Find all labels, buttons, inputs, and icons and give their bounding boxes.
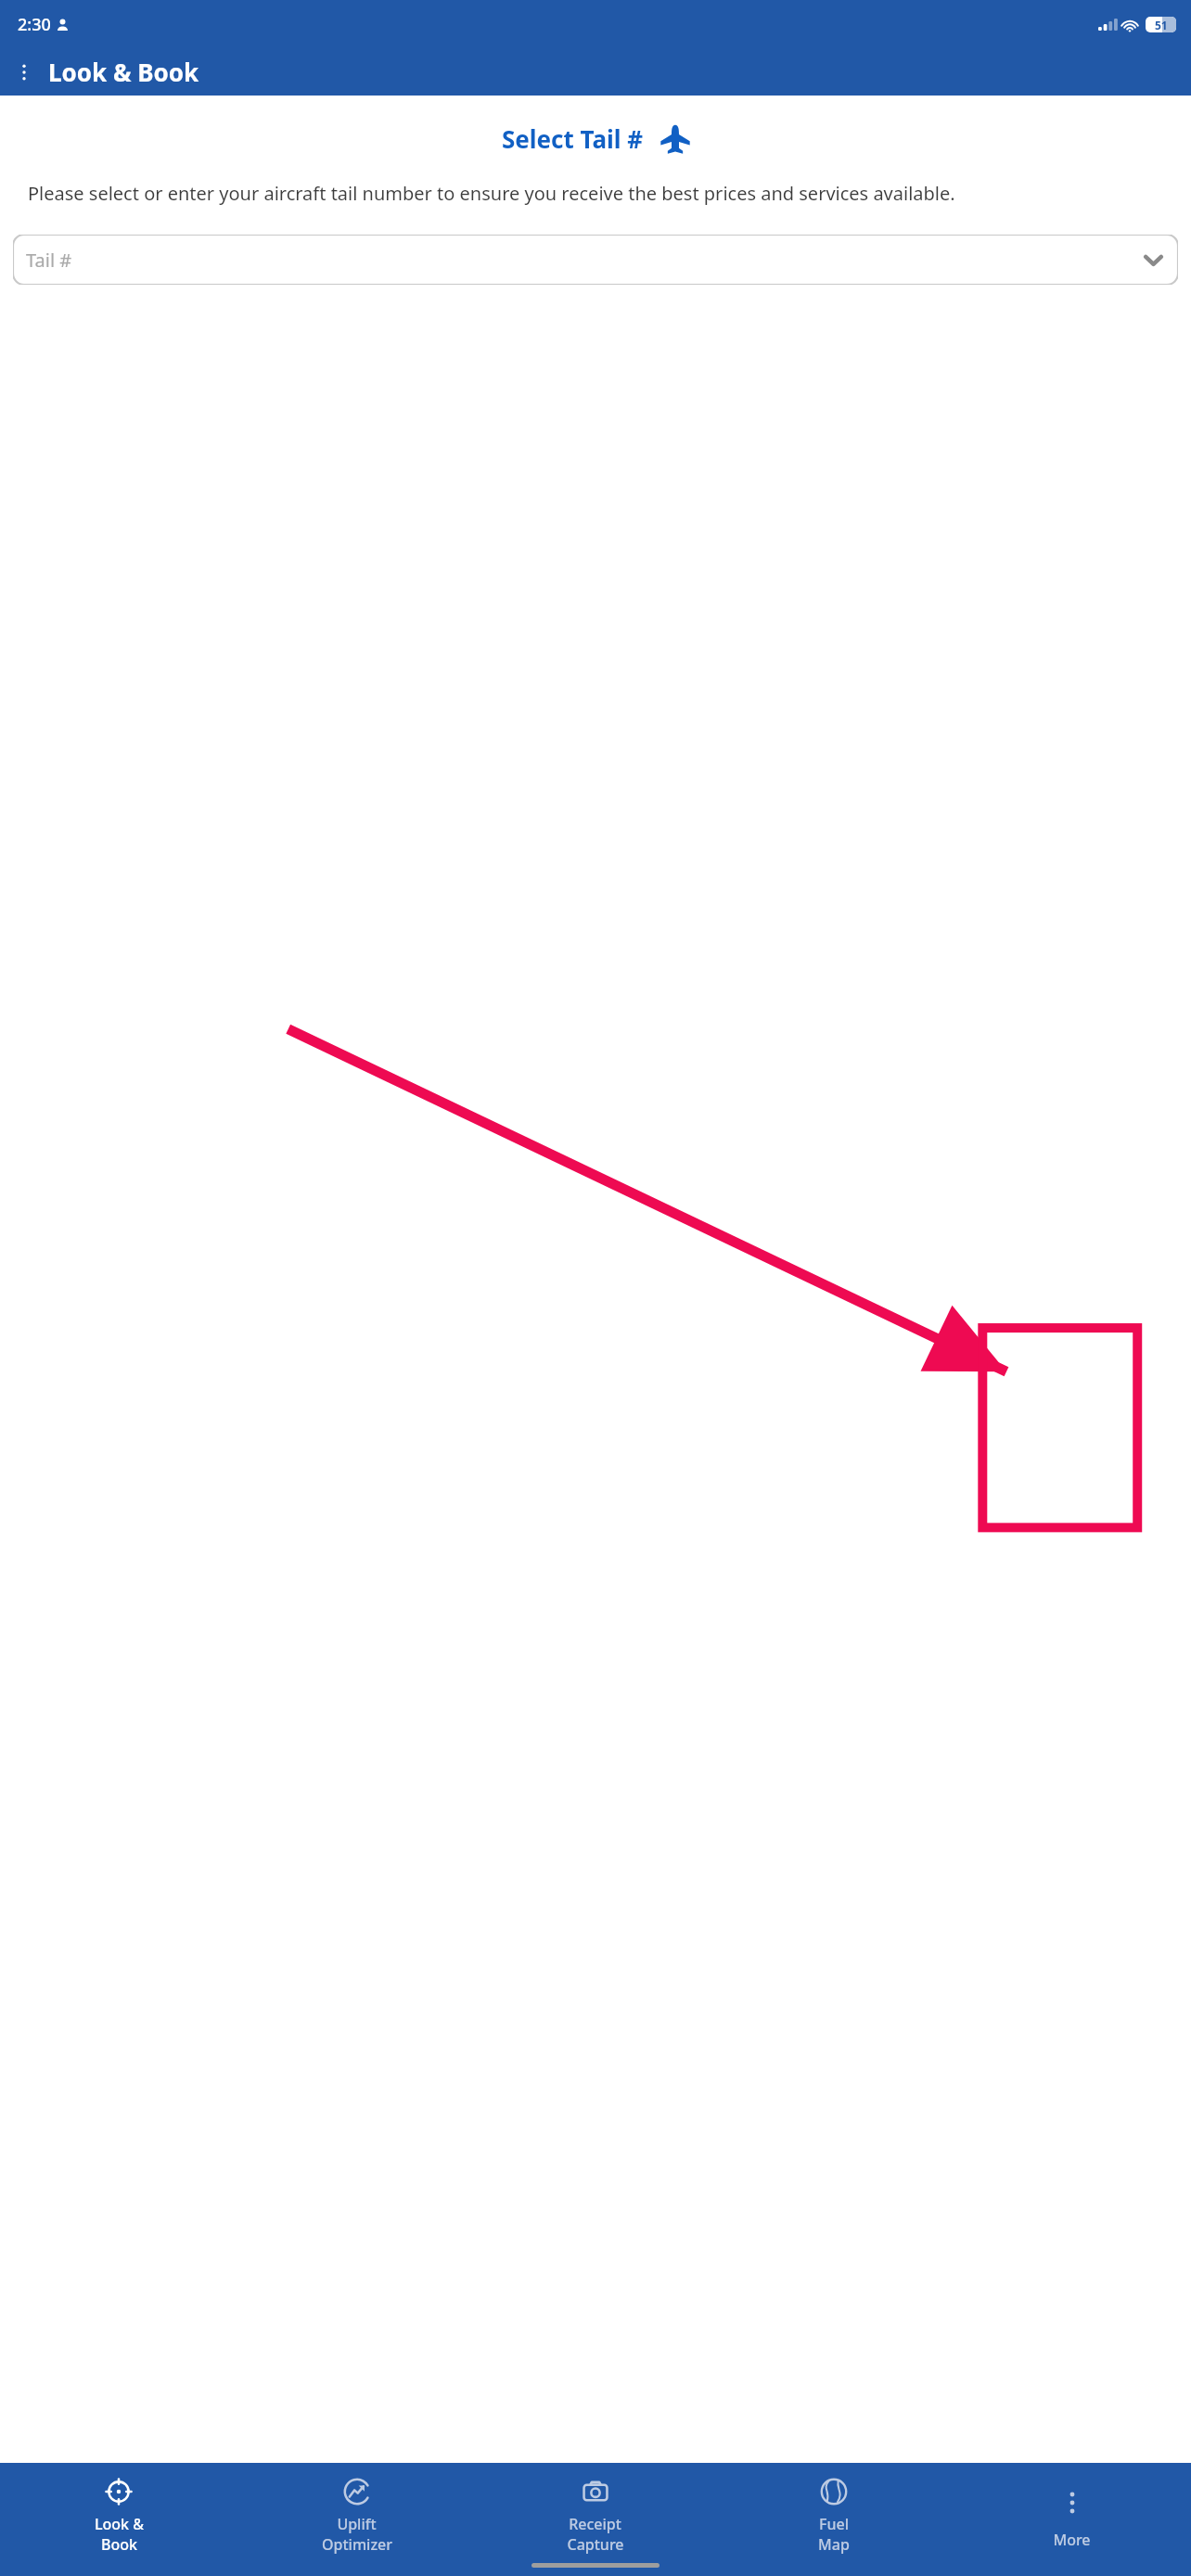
button[interactable]: Look and Book <box>0 2474 237 2576</box>
staticText: More <box>1053 2530 1091 2550</box>
button[interactable]: Uplift Optimizer <box>237 2474 476 2576</box>
button[interactable]: Select tail number <box>13 235 1178 285</box>
staticText: Book <box>101 2534 137 2555</box>
button[interactable]: Fuel Map <box>714 2474 953 2576</box>
staticText: Look & <box>95 2514 144 2534</box>
staticText: Select Tail # <box>502 122 644 155</box>
staticText: Receipt <box>569 2514 621 2534</box>
staticText: Please select or enter your aircraft tai… <box>28 181 1156 206</box>
staticText: Tail # <box>26 248 72 273</box>
staticText: Fuel <box>819 2514 849 2534</box>
staticText: Uplift <box>337 2514 377 2534</box>
staticText: 51 <box>1155 18 1168 32</box>
button[interactable]: More options <box>0 48 48 96</box>
staticText: 2:30 <box>18 13 51 36</box>
staticText: Capture <box>567 2534 624 2555</box>
button[interactable]: More <box>953 2474 1191 2576</box>
button[interactable]: Receipt Capture <box>476 2474 714 2576</box>
staticText: Map <box>818 2534 850 2555</box>
staticText: Look & Book <box>48 56 199 88</box>
staticText: Optimizer <box>322 2534 392 2555</box>
